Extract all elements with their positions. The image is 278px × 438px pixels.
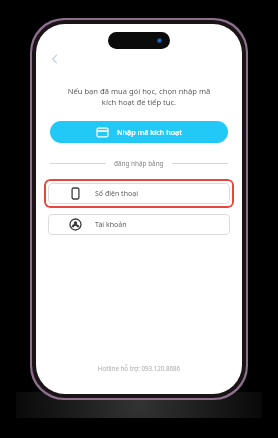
button[interactable]: Tài khoản bbox=[48, 214, 230, 235]
staticText: Tài khoản bbox=[95, 220, 127, 230]
button[interactable]: Back bbox=[42, 46, 68, 72]
button[interactable]: Nhập mã kích hoạt bbox=[50, 121, 228, 143]
staticText: Nếu bạn đã mua gói học, chọn nhập mã kíc… bbox=[48, 86, 230, 107]
staticText: đăng nhập bằng bbox=[114, 159, 164, 168]
staticText: Hotline hỗ trợ: 093.120.8686 bbox=[36, 364, 242, 372]
staticText: Nhập mã kích hoạt bbox=[117, 127, 182, 137]
button[interactable]: Số điện thoại bbox=[48, 183, 230, 204]
staticText: Số điện thoại bbox=[95, 189, 138, 199]
